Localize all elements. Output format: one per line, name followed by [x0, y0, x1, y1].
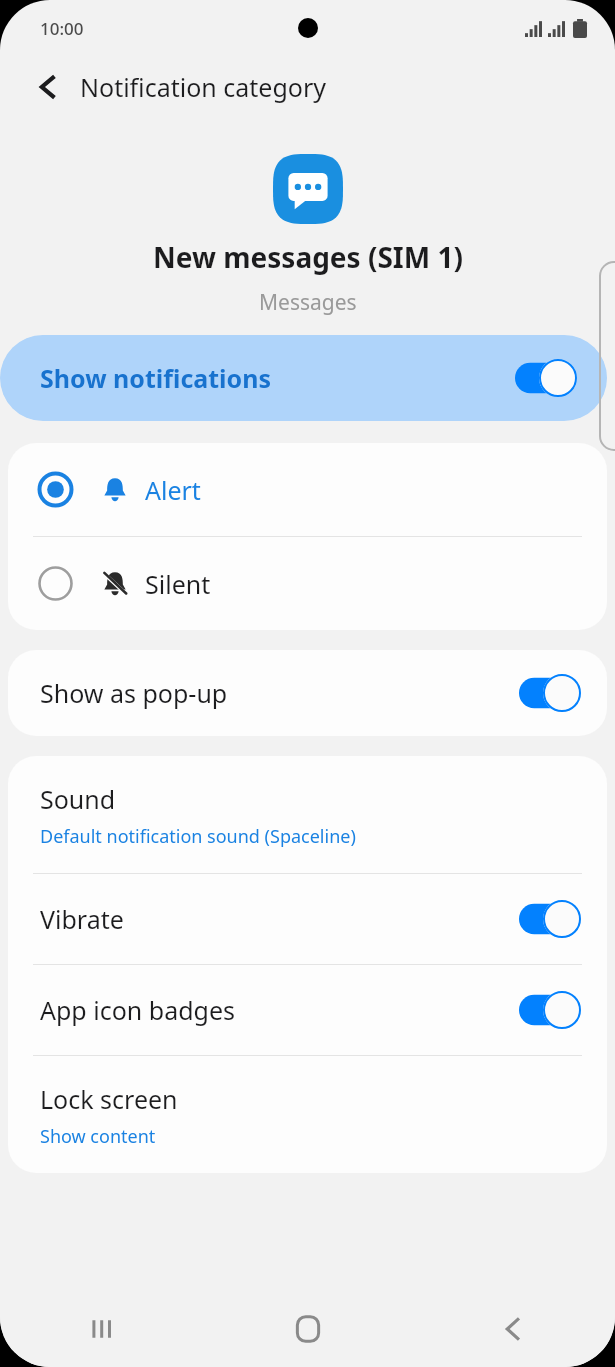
button[interactable]: Lock screen	[8, 1056, 607, 1173]
staticText: Default notification sound (Spaceline)	[40, 824, 356, 849]
staticText: 10:00	[40, 17, 84, 40]
staticText: Alert	[145, 473, 201, 507]
staticText: Show as pop-up	[40, 676, 228, 710]
button[interactable]: Home	[205, 1291, 410, 1367]
staticText: App icon badges	[40, 993, 235, 1027]
staticText: Messages	[259, 288, 357, 317]
button[interactable]: App icon badges	[8, 965, 607, 1055]
button[interactable]: Show notifications	[0, 335, 607, 421]
staticText: Show content	[40, 1124, 156, 1149]
staticText: New messages (SIM 1)	[153, 238, 463, 276]
staticText: Vibrate	[40, 902, 124, 936]
button[interactable]: Show as pop-up	[8, 650, 607, 736]
staticText: Notification category	[80, 70, 326, 104]
button[interactable]: Silent	[8, 537, 607, 630]
button[interactable]: Recent apps	[0, 1291, 205, 1367]
button[interactable]: Sound	[8, 756, 607, 873]
button[interactable]: Back	[410, 1291, 615, 1367]
staticText: Silent	[145, 567, 211, 601]
button[interactable]: Vibrate	[8, 874, 607, 964]
staticText: Show notifications	[40, 361, 272, 395]
button[interactable]: Back	[26, 65, 70, 109]
button[interactable]: Alert	[8, 443, 607, 536]
staticText: Sound	[40, 782, 116, 816]
staticText: Lock screen	[40, 1082, 178, 1116]
